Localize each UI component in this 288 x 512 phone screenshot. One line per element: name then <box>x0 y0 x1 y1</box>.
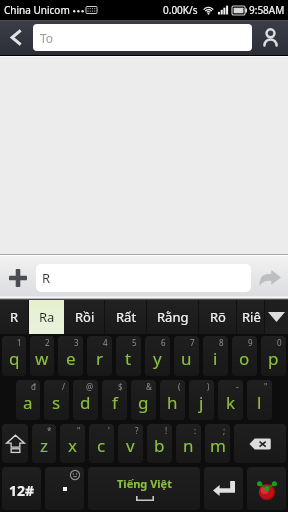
staticText: 4 <box>103 337 108 348</box>
staticText: m <box>210 434 226 457</box>
button[interactable]: Riê <box>237 300 265 334</box>
staticText: l <box>257 391 262 414</box>
staticText: b <box>154 434 165 457</box>
staticText: c <box>97 434 106 457</box>
staticText: " <box>264 381 268 392</box>
staticText: : <box>194 425 197 436</box>
staticText: y <box>153 347 162 370</box>
staticText: g <box>138 391 149 414</box>
button[interactable]: x <box>60 424 85 463</box>
other: Space <box>86 465 202 512</box>
staticText: i <box>213 347 218 370</box>
button[interactable]: Send <box>251 256 288 300</box>
staticText: 1 <box>17 337 22 348</box>
button[interactable]: Rằng <box>147 300 199 334</box>
staticText: R <box>10 308 19 326</box>
button[interactable]: a <box>16 380 40 420</box>
button[interactable]: s <box>44 380 69 420</box>
staticText: 0 <box>277 337 282 348</box>
button[interactable]: m <box>205 424 230 463</box>
button[interactable]: d <box>73 380 98 420</box>
staticText: u <box>181 347 192 370</box>
staticText: Rất <box>116 308 137 326</box>
button[interactable]: g <box>131 380 156 420</box>
staticText: ! <box>165 425 168 436</box>
other: Input method <box>245 465 288 512</box>
staticText: Rằng <box>157 308 189 326</box>
button[interactable]: Choose contact <box>252 20 288 55</box>
button[interactable]: Rõ <box>199 300 237 334</box>
other: Enter <box>202 465 245 512</box>
button[interactable]: 12# <box>2 467 41 510</box>
button[interactable]: e <box>58 336 83 376</box>
staticText: 5 <box>132 337 137 348</box>
staticText: & <box>146 381 152 392</box>
button[interactable]: Add attachment <box>0 256 36 300</box>
button[interactable] <box>2 424 28 463</box>
button[interactable]: w <box>30 336 54 376</box>
staticText: Ra <box>39 308 55 326</box>
button[interactable] <box>234 424 286 463</box>
staticText: s <box>52 391 61 414</box>
button[interactable]: r <box>87 336 112 376</box>
button[interactable]: z <box>32 424 56 463</box>
staticText: Rồi <box>75 308 95 326</box>
button[interactable]: R <box>0 300 29 334</box>
button[interactable]: v <box>118 424 143 463</box>
button[interactable]: q <box>2 336 26 376</box>
staticText: r <box>96 347 104 370</box>
button[interactable]: b <box>147 424 172 463</box>
button[interactable]: R <box>36 264 251 292</box>
staticText: v <box>126 434 135 457</box>
staticText: ) <box>207 381 210 392</box>
button[interactable]: u <box>174 336 199 376</box>
staticText: 3 <box>74 337 79 348</box>
button[interactable]: Back <box>0 20 33 55</box>
button[interactable]: Tiếng Việt <box>88 467 200 510</box>
button[interactable]: To <box>33 24 252 51</box>
button[interactable]: f <box>102 380 127 420</box>
staticText: t <box>125 347 132 370</box>
button[interactable]: p <box>261 336 286 376</box>
button[interactable]: More suggestions <box>265 300 288 334</box>
button[interactable]: Ra <box>29 300 64 334</box>
button[interactable] <box>204 467 243 510</box>
button[interactable]: k <box>218 380 243 420</box>
staticText: 12# <box>9 481 35 500</box>
button[interactable]: l <box>247 380 272 420</box>
staticText: w <box>35 347 49 370</box>
staticText: ( <box>178 381 181 392</box>
staticText: " <box>77 425 81 436</box>
button[interactable]: o <box>232 336 257 376</box>
button[interactable]: i <box>203 336 228 376</box>
staticText: n <box>183 434 194 457</box>
button[interactable]: j <box>189 380 214 420</box>
button[interactable] <box>247 467 286 510</box>
button[interactable]: t <box>116 336 141 376</box>
button[interactable]: Rồi <box>64 300 105 334</box>
staticText: z <box>40 434 48 457</box>
staticText: $ <box>118 381 123 392</box>
button[interactable]: n <box>176 424 201 463</box>
staticText: q <box>9 347 20 370</box>
other: Backspace <box>232 422 288 465</box>
staticText: x <box>68 434 77 457</box>
button[interactable]: y <box>145 336 170 376</box>
button[interactable]: c <box>89 424 114 463</box>
staticText: Rõ <box>210 308 226 326</box>
staticText: / <box>62 381 65 392</box>
other: Shift <box>0 422 30 465</box>
staticText: ; <box>223 425 226 436</box>
staticText: o <box>239 347 250 370</box>
button[interactable]: Rất <box>105 300 147 334</box>
staticText: đ <box>31 381 36 392</box>
button[interactable] <box>45 467 84 510</box>
staticText: j <box>199 391 204 414</box>
staticText: a <box>23 391 33 414</box>
staticText: 9:58AM <box>249 3 285 17</box>
staticText: k <box>226 391 236 414</box>
staticText: d <box>80 391 91 414</box>
staticText: China Unicom <box>4 3 70 17</box>
button[interactable]: h <box>160 380 185 420</box>
staticText: 9 <box>248 337 253 348</box>
